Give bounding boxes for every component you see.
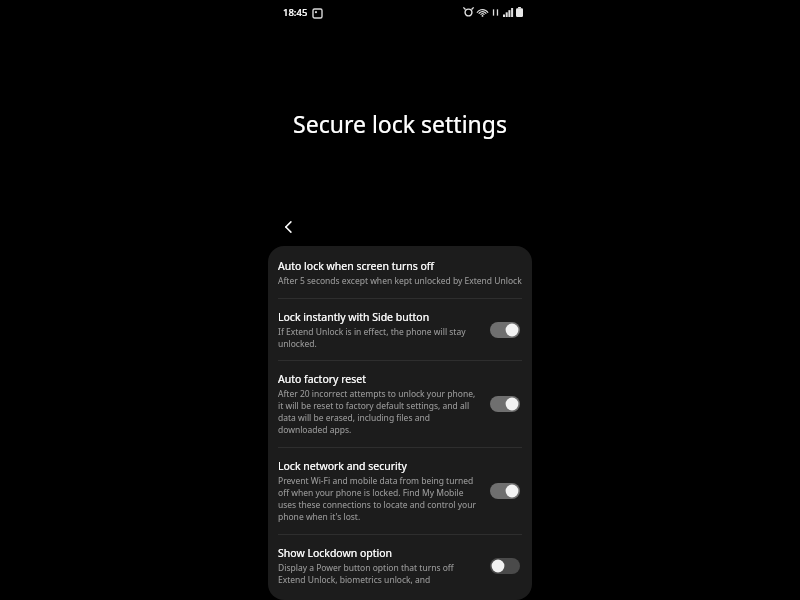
button[interactable]: Lock instantly with Side button xyxy=(268,299,532,360)
button[interactable]: Auto factory reset xyxy=(268,361,532,447)
staticText: After 20 incorrect attempts to unlock yo… xyxy=(278,388,478,436)
button[interactable]: Show Lockdown option xyxy=(268,535,532,600)
button[interactable]: Toggle on xyxy=(488,319,522,341)
button[interactable]: Auto lock when screen turns off xyxy=(268,246,532,298)
staticText: Lock instantly with Side button xyxy=(278,310,430,324)
staticText: 18:45 xyxy=(283,6,308,19)
staticText: Auto factory reset xyxy=(278,372,366,386)
staticText: Secure lock settings xyxy=(0,108,800,139)
staticText: Auto lock when screen turns off xyxy=(278,259,435,273)
button[interactable]: Lock network and security xyxy=(268,448,532,534)
staticText: Show Lockdown option xyxy=(278,546,393,560)
button[interactable]: Toggle on xyxy=(488,393,522,415)
button[interactable]: Back xyxy=(272,210,306,244)
button[interactable]: Toggle on xyxy=(488,480,522,502)
staticText: Display a Power button option that turns… xyxy=(278,562,478,586)
staticText: Prevent Wi-Fi and mobile data from being… xyxy=(278,475,478,523)
button[interactable]: Toggle off xyxy=(488,555,522,577)
staticText: After 5 seconds except when kept unlocke… xyxy=(278,275,522,287)
staticText: Lock network and security xyxy=(278,459,407,473)
staticText: If Extend Unlock is in effect, the phone… xyxy=(278,326,478,350)
